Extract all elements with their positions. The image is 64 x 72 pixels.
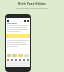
staticText: Create notes the way you want — [16, 7, 48, 10]
button[interactable]: Attachment — [12, 54, 17, 57]
button[interactable]: Attachment — [24, 54, 29, 57]
button[interactable]: Attachment — [7, 54, 11, 57]
button[interactable]: Back — [7, 18, 29, 23]
button[interactable]: Attachment — [18, 54, 23, 57]
staticText: Rich Text Editor — [18, 1, 46, 6]
